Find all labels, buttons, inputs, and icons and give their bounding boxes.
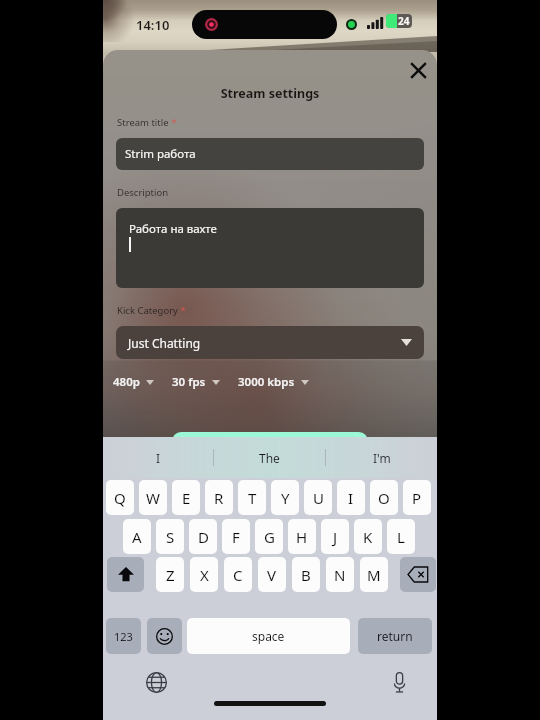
- button[interactable]: O: [370, 480, 398, 515]
- staticText: 123: [114, 629, 133, 644]
- staticText: Y: [281, 488, 290, 508]
- staticText: V: [267, 565, 277, 585]
- staticText: H: [296, 527, 308, 547]
- staticText: P: [412, 488, 422, 508]
- staticText: Q: [114, 488, 126, 508]
- button[interactable]: T: [238, 480, 266, 515]
- staticText: A: [132, 527, 142, 547]
- staticText: I: [156, 450, 161, 466]
- staticText: N: [334, 565, 346, 585]
- button[interactable]: C: [224, 557, 252, 592]
- staticText: 30 fps: [172, 374, 206, 390]
- staticText: X: [200, 565, 209, 585]
- staticText: return: [377, 628, 413, 644]
- button[interactable]: J: [321, 519, 349, 554]
- button[interactable]: K: [354, 519, 382, 554]
- button[interactable]: Change keyboard: [143, 669, 169, 695]
- button[interactable]: U: [304, 480, 332, 515]
- button[interactable]: F: [222, 519, 250, 554]
- button[interactable]: Q: [106, 480, 134, 515]
- button[interactable]: Strim работа: [116, 138, 424, 170]
- button[interactable]: 30 fps: [172, 374, 220, 390]
- staticText: B: [301, 565, 311, 585]
- button[interactable]: N: [326, 557, 354, 592]
- staticText: F: [232, 527, 240, 547]
- button[interactable]: S: [156, 519, 184, 554]
- button[interactable]: G: [255, 519, 283, 554]
- staticText: Z: [166, 565, 175, 585]
- staticText: Strim работа: [125, 146, 196, 162]
- staticText: U: [313, 488, 324, 508]
- button[interactable]: H: [288, 519, 316, 554]
- button[interactable]: P: [403, 480, 431, 515]
- staticText: Kick Category: [117, 304, 178, 317]
- button[interactable]: X: [190, 557, 218, 592]
- button[interactable]: space: [187, 618, 350, 654]
- button[interactable]: Работа на вахте: [116, 208, 424, 288]
- staticText: 480p: [113, 374, 140, 390]
- button[interactable]: Y: [271, 480, 299, 515]
- button[interactable]: Z: [156, 557, 184, 592]
- button[interactable]: return: [358, 618, 432, 654]
- button[interactable]: Close: [406, 58, 430, 82]
- staticText: I'm: [373, 450, 391, 466]
- staticText: *: [178, 304, 186, 317]
- button[interactable]: V: [258, 557, 286, 592]
- button[interactable]: Dictation: [386, 669, 412, 695]
- button[interactable]: D: [189, 519, 217, 554]
- button[interactable]: 123: [106, 618, 141, 654]
- staticText: J: [333, 527, 338, 547]
- staticText: space: [252, 628, 285, 644]
- button[interactable]: R: [205, 480, 233, 515]
- staticText: Description: [117, 186, 169, 199]
- staticText: Just Chatting: [128, 335, 201, 351]
- button[interactable]: E: [172, 480, 200, 515]
- staticText: Работа на вахте: [129, 221, 217, 237]
- staticText: M: [367, 565, 381, 585]
- staticText: S: [166, 527, 175, 547]
- button[interactable]: A: [123, 519, 151, 554]
- button[interactable]: 480p: [113, 374, 154, 390]
- button[interactable]: I: [103, 437, 213, 478]
- staticText: The: [259, 450, 280, 466]
- button[interactable]: Go Live: [172, 432, 368, 448]
- button[interactable]: The: [214, 437, 325, 478]
- button[interactable]: Backspace: [400, 557, 436, 592]
- staticText: W: [146, 488, 160, 508]
- staticText: R: [214, 488, 224, 508]
- staticText: Stream title: [117, 116, 169, 129]
- button[interactable]: M: [360, 557, 388, 592]
- staticText: 24: [398, 14, 410, 28]
- button[interactable]: 3000 kbps: [238, 374, 309, 390]
- staticText: I: [348, 488, 354, 508]
- staticText: O: [378, 488, 390, 508]
- button[interactable]: L: [387, 519, 415, 554]
- staticText: *: [169, 116, 177, 129]
- staticText: K: [363, 527, 373, 547]
- staticText: C: [233, 565, 243, 585]
- button[interactable]: W: [139, 480, 167, 515]
- staticText: D: [198, 527, 209, 547]
- button[interactable]: I'm: [326, 437, 437, 478]
- button[interactable]: Just Chatting: [116, 326, 424, 359]
- staticText: T: [248, 488, 257, 508]
- staticText: L: [397, 527, 405, 547]
- staticText: E: [182, 488, 191, 508]
- button[interactable]: I: [337, 480, 365, 515]
- staticText: 3000 kbps: [238, 374, 295, 390]
- staticText: Stream settings: [103, 85, 437, 102]
- staticText: 14:10: [136, 16, 170, 34]
- button[interactable]: B: [292, 557, 320, 592]
- button[interactable]: Emoji: [147, 618, 182, 654]
- button[interactable]: Shift: [107, 557, 144, 592]
- staticText: G: [264, 527, 275, 547]
